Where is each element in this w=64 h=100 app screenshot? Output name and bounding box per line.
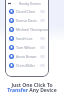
button[interactable]: Chris Miller <box>5 61 49 70</box>
staticText: Chris Miller <box>16 63 36 68</box>
button[interactable]: David Chen <box>5 7 49 16</box>
button[interactable]: Send <box>40 46 45 49</box>
staticText: Just One Click To Transfer Any Device <box>2 82 62 93</box>
staticText: Tom Wilson <box>16 45 36 50</box>
staticText: David Chen <box>16 9 36 14</box>
button[interactable]: Send <box>40 37 45 40</box>
button[interactable]: Tom Wilson <box>5 43 49 52</box>
button[interactable]: Anna Brown <box>5 52 49 61</box>
button[interactable]: Michael Thompson <box>5 25 49 34</box>
button[interactable]: Sarah Lee <box>5 34 49 43</box>
staticText: Emma Davis <box>16 18 37 23</box>
staticText: Sarah Lee <box>16 36 33 41</box>
button[interactable]: Send <box>40 10 45 13</box>
staticText: Anna Brown <box>16 54 37 59</box>
button[interactable]: Send <box>40 64 45 67</box>
button[interactable]: Send <box>40 19 45 22</box>
button[interactable]: Emma Davis <box>5 16 49 25</box>
button[interactable]: Send <box>40 55 45 58</box>
button[interactable]: Back <box>8 2 11 5</box>
staticText: Nearby Devices <box>19 2 41 6</box>
staticText: Michael Thompson <box>16 27 49 32</box>
